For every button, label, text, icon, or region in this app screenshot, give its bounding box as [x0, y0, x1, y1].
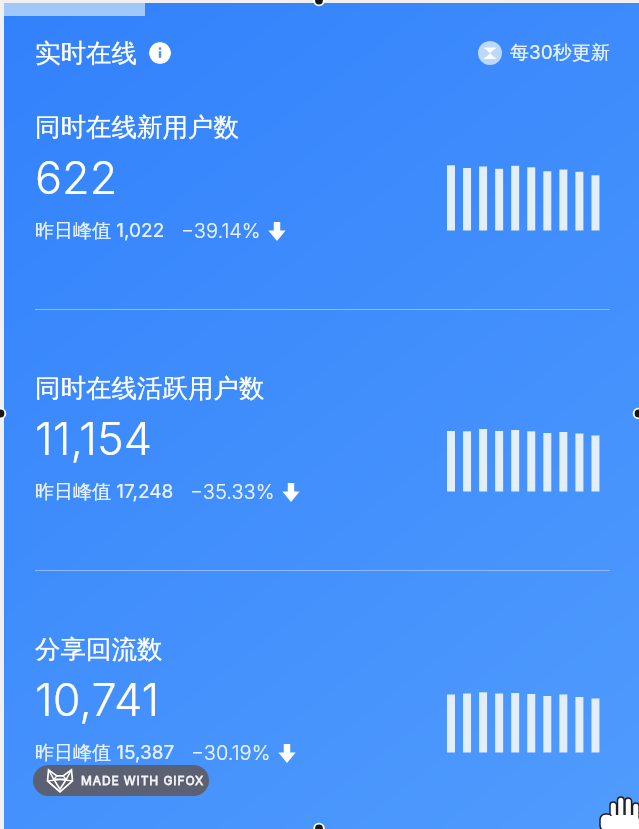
staticText: 昨日峰值 1,022 — [35, 219, 165, 243]
staticText: 实时在线 — [35, 37, 137, 69]
button[interactable]: Auto refresh — [478, 41, 610, 65]
staticText: 分享回流数 — [35, 633, 163, 665]
staticText: 同时在线新用户数 — [35, 111, 239, 143]
staticText: −30.19% — [191, 741, 271, 765]
staticText: 同时在线活跃用户数 — [35, 372, 265, 404]
other: Auto refresh — [478, 41, 502, 65]
staticText: MADE WITH GIFOX — [81, 773, 205, 788]
button[interactable]: Info — [149, 42, 171, 64]
button[interactable]: MADE WITH GIFOX — [33, 765, 209, 796]
staticText: −39.14% — [181, 219, 261, 243]
staticText: 每30秒更新 — [510, 41, 610, 65]
staticText: 昨日峰值 15,387 — [35, 741, 175, 765]
staticText: 昨日峰值 17,248 — [35, 480, 174, 504]
staticText: −35.33% — [190, 480, 275, 504]
staticText: 622 — [35, 150, 118, 204]
button[interactable]: 实时在线 — [35, 37, 171, 69]
staticText: 11,154 — [35, 411, 152, 465]
staticText: 10,741 — [35, 672, 160, 726]
